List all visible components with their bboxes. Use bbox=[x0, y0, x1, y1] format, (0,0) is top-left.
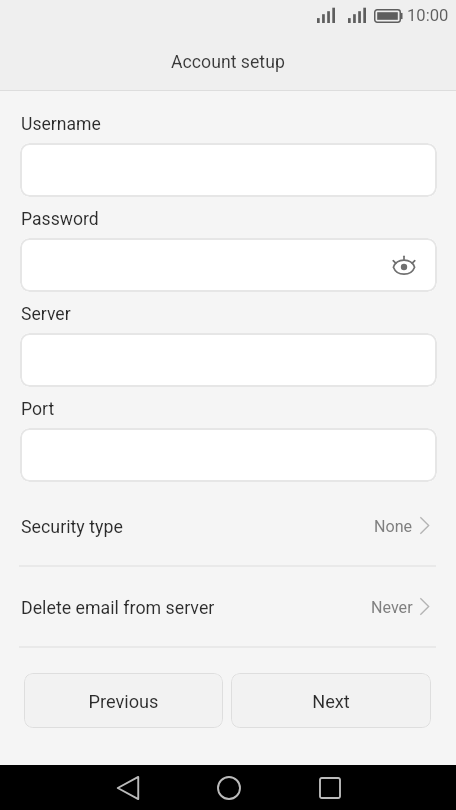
staticText: Previous bbox=[88, 691, 159, 712]
staticText: Never bbox=[371, 598, 413, 617]
button[interactable] bbox=[20, 143, 437, 197]
button[interactable]: Show password bbox=[20, 238, 437, 292]
button[interactable]: Security type bbox=[0, 485, 456, 565]
button[interactable]: Home bbox=[178, 765, 279, 810]
staticText: Port bbox=[21, 399, 55, 420]
staticText: None bbox=[374, 517, 413, 536]
staticText: Password bbox=[21, 209, 99, 230]
button[interactable]: Delete email from server bbox=[0, 566, 456, 647]
staticText: Next bbox=[312, 691, 350, 712]
button[interactable]: Back bbox=[77, 765, 178, 810]
staticText: Username bbox=[21, 114, 101, 135]
staticText: Account setup bbox=[171, 52, 285, 73]
button[interactable]: Previous bbox=[24, 673, 223, 728]
button[interactable]: Recent apps bbox=[279, 765, 380, 810]
staticText: Server bbox=[21, 304, 71, 325]
button[interactable]: Next bbox=[231, 673, 431, 728]
staticText: Security type bbox=[21, 516, 123, 537]
staticText: 10:00 bbox=[407, 6, 449, 25]
button[interactable] bbox=[20, 428, 437, 482]
button[interactable] bbox=[20, 333, 437, 387]
button[interactable]: Show password bbox=[387, 249, 421, 283]
staticText: Delete email from server bbox=[21, 597, 215, 618]
